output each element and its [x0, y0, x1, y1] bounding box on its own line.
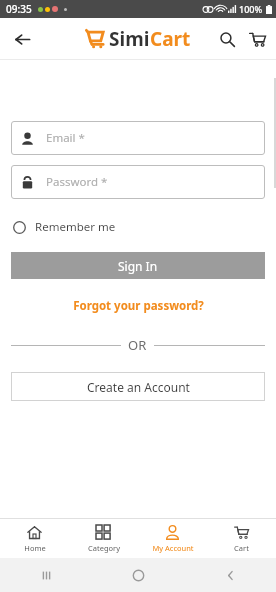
staticText: 09:35 — [6, 2, 32, 16]
button[interactable]: Remember me — [11, 216, 118, 238]
button[interactable]: Home — [0, 519, 69, 558]
staticText: Forgot your password? — [73, 298, 204, 314]
staticText: Home — [24, 543, 46, 553]
staticText: Simi — [109, 26, 150, 52]
button[interactable]: Sign In — [11, 252, 265, 279]
button[interactable]: Password * — [11, 165, 265, 199]
button[interactable]: My Account — [138, 519, 207, 558]
staticText: Password * — [46, 174, 108, 190]
button[interactable]: Back — [184, 558, 276, 592]
staticText: Remember me — [35, 219, 116, 235]
button[interactable]: Search — [212, 24, 242, 54]
staticText: OR — [128, 336, 147, 354]
button[interactable]: Email * — [11, 121, 265, 155]
button[interactable]: Cart — [242, 24, 272, 54]
button[interactable]: Back — [6, 23, 38, 55]
button[interactable]: Recent apps — [0, 558, 92, 592]
staticText: Create an Account — [87, 379, 190, 395]
staticText: 100% — [239, 3, 263, 15]
staticText: Cart — [150, 26, 191, 52]
staticText: Category — [88, 543, 120, 553]
staticText: Email * — [46, 130, 85, 146]
staticText: Sign In — [118, 258, 158, 274]
button[interactable]: Category — [69, 519, 138, 558]
staticText: Cart — [234, 543, 249, 553]
button[interactable]: Cart — [207, 519, 276, 558]
button[interactable]: Forgot your password? — [11, 296, 265, 316]
button[interactable]: Create an Account — [11, 372, 265, 401]
button[interactable]: Home — [92, 558, 184, 592]
staticText: My Account — [152, 543, 194, 553]
